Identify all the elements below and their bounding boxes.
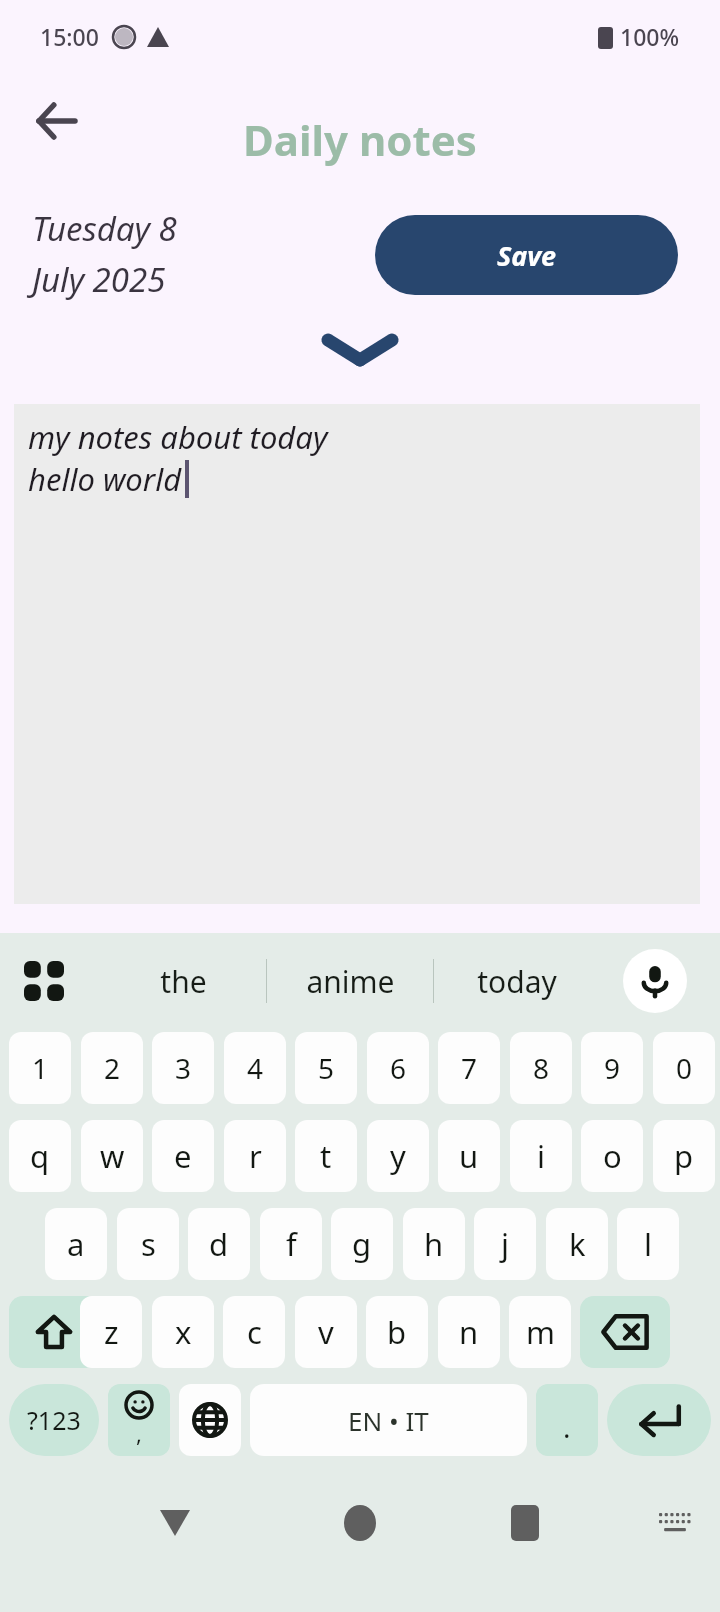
staticText: Save [497, 237, 557, 274]
button[interactable]: 4 [224, 1032, 286, 1104]
staticText: q [30, 1135, 50, 1177]
button[interactable]: r [224, 1120, 286, 1192]
staticText: , [136, 1418, 142, 1448]
staticText: 8 [533, 1049, 550, 1087]
button[interactable]: i [510, 1120, 572, 1192]
staticText: . [563, 1408, 571, 1446]
button[interactable]: Shift [9, 1296, 99, 1368]
button[interactable]: 6 [367, 1032, 429, 1104]
staticText: p [674, 1135, 694, 1177]
button[interactable]: b [366, 1296, 428, 1368]
staticText: anime [306, 961, 395, 1002]
button[interactable]: t [295, 1120, 357, 1192]
button[interactable]: Save [375, 215, 678, 295]
button[interactable]: 3 [152, 1032, 214, 1104]
staticText: Daily notes [243, 111, 477, 168]
staticText: 15:00 [40, 21, 99, 52]
staticText: 7 [461, 1049, 478, 1087]
staticText: u [459, 1135, 479, 1177]
button[interactable]: j [474, 1208, 536, 1280]
staticText: a [67, 1223, 85, 1265]
button[interactable]: y [367, 1120, 429, 1192]
staticText: e [174, 1135, 192, 1177]
button[interactable]: l [617, 1208, 679, 1280]
button[interactable]: q [9, 1120, 71, 1192]
button[interactable]: g [331, 1208, 393, 1280]
button[interactable]: Home [325, 1488, 395, 1558]
button[interactable]: 9 [581, 1032, 643, 1104]
button[interactable]: Change language [179, 1384, 241, 1456]
button[interactable]: Enter [607, 1384, 711, 1456]
staticText: k [569, 1223, 586, 1265]
staticText: July 2025 [32, 257, 166, 302]
button[interactable]: Voice input [623, 949, 687, 1013]
button[interactable]: my notes about today [14, 404, 700, 904]
button[interactable]: Switch keyboard [644, 1492, 706, 1554]
button[interactable]: Hide keyboard [140, 1473, 210, 1573]
button[interactable]: v [295, 1296, 357, 1368]
staticText: y [390, 1135, 406, 1177]
staticText: b [387, 1311, 407, 1353]
button[interactable]: h [403, 1208, 465, 1280]
staticText: x [175, 1311, 192, 1353]
staticText: today [477, 961, 557, 1002]
button[interactable]: Emoji [108, 1384, 170, 1456]
staticText: h [424, 1223, 444, 1265]
staticText: o [603, 1135, 622, 1177]
button[interactable]: a [45, 1208, 107, 1280]
button[interactable]: today [434, 946, 600, 1016]
button[interactable]: 8 [510, 1032, 572, 1104]
button[interactable]: z [80, 1296, 142, 1368]
staticText: v [318, 1311, 334, 1353]
button[interactable]: Backspace [580, 1296, 670, 1368]
staticText: r [249, 1135, 262, 1177]
staticText: n [459, 1311, 479, 1353]
button[interactable]: p [653, 1120, 715, 1192]
staticText: d [209, 1223, 229, 1265]
button[interactable]: 7 [438, 1032, 500, 1104]
button[interactable]: s [117, 1208, 179, 1280]
staticText: 9 [604, 1049, 621, 1087]
staticText: g [352, 1223, 372, 1265]
staticText: z [104, 1311, 119, 1353]
button[interactable]: ?123 [9, 1384, 99, 1456]
staticText: my notes about today [28, 416, 328, 458]
button[interactable]: Recents [490, 1473, 560, 1573]
button[interactable]: 5 [295, 1032, 357, 1104]
staticText: ?123 [27, 1403, 81, 1437]
button[interactable]: 2 [81, 1032, 143, 1104]
staticText: m [526, 1311, 555, 1353]
button[interactable]: Back [18, 82, 96, 160]
staticText: 6 [390, 1049, 407, 1087]
button[interactable]: the [100, 946, 266, 1016]
staticText: 1 [32, 1049, 49, 1087]
button[interactable]: 1 [9, 1032, 71, 1104]
staticText: EN • IT [348, 1403, 429, 1438]
button[interactable]: Keyboard apps [14, 951, 74, 1011]
button[interactable]: e [152, 1120, 214, 1192]
button[interactable]: o [581, 1120, 643, 1192]
staticText: 4 [247, 1049, 264, 1087]
button[interactable]: EN • IT [250, 1384, 527, 1456]
button[interactable]: u [438, 1120, 500, 1192]
button[interactable]: f [260, 1208, 322, 1280]
staticText: t [320, 1135, 332, 1177]
staticText: 2 [104, 1049, 121, 1087]
staticText: l [644, 1223, 652, 1265]
button[interactable]: x [152, 1296, 214, 1368]
staticText: 5 [318, 1049, 335, 1087]
button[interactable]: m [509, 1296, 571, 1368]
button[interactable]: n [438, 1296, 500, 1368]
staticText: j [501, 1223, 509, 1265]
button[interactable]: Expand [315, 330, 405, 370]
staticText: 100% [620, 21, 680, 52]
staticText: f [286, 1223, 297, 1265]
button[interactable]: c [223, 1296, 285, 1368]
button[interactable]: d [188, 1208, 250, 1280]
button[interactable]: . [536, 1384, 598, 1456]
button[interactable]: anime [267, 946, 433, 1016]
button[interactable]: 0 [653, 1032, 715, 1104]
button[interactable]: w [81, 1120, 143, 1192]
staticText: 3 [175, 1049, 192, 1087]
button[interactable]: k [546, 1208, 608, 1280]
